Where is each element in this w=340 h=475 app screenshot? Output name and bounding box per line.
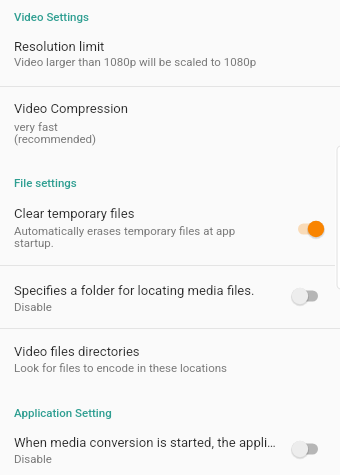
staticText: Application Setting [14,406,112,419]
staticText: Automatically erases temporary files at … [14,224,246,250]
button[interactable]: Video files directories [0,329,340,392]
staticText: Look for files to encode in these locati… [14,361,304,374]
button[interactable]: Clear temporary files [0,196,340,265]
staticText: Resolution limit [14,39,304,54]
staticText: Video Settings [14,10,89,23]
staticText: very fast (recommended) [14,120,304,146]
staticText: Specifies a folder for locating media fi… [14,283,304,298]
button[interactable]: When media conversion is started, the ap… [0,426,340,475]
button[interactable]: Clear temporary files, on [291,217,325,241]
staticText: Video files directories [14,344,304,359]
staticText: Clear temporary files [14,206,246,221]
button[interactable]: Resolution limit [0,30,340,86]
staticText: Disable [14,300,304,313]
button[interactable]: Video Compression [0,87,340,160]
staticText: Disable [14,452,296,465]
button[interactable]: When media conversion is started, the ap… [291,437,325,461]
staticText: Video larger than 1080p will be scaled t… [14,55,304,68]
button[interactable]: Specifies a folder for locating media fi… [291,284,325,308]
staticText: When media conversion is started, the ap… [14,435,296,450]
other: Scroll position [333,146,340,289]
button[interactable]: Specifies a folder for locating media fi… [0,266,340,328]
staticText: File settings [14,176,77,189]
staticText: Video Compression [14,101,304,116]
